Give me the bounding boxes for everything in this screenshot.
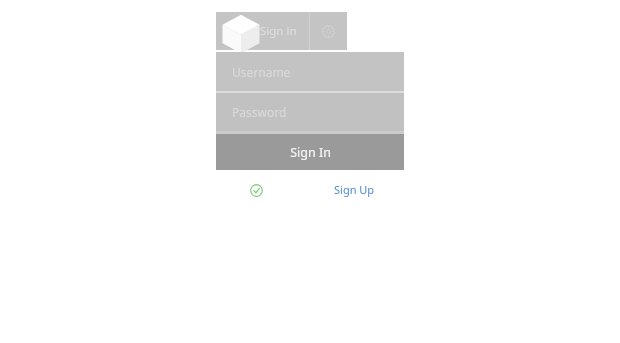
staticText: Password xyxy=(232,104,287,120)
button[interactable]: Sign Up xyxy=(330,180,378,198)
staticText: Sign In xyxy=(290,144,331,161)
staticText: Username xyxy=(232,64,291,80)
button[interactable]: Password xyxy=(216,93,404,131)
staticText: Sign Up xyxy=(334,182,375,197)
button[interactable]: Sign in xyxy=(216,12,309,50)
button[interactable]: Remember me xyxy=(245,179,267,201)
staticText: Sign in xyxy=(260,23,297,39)
button[interactable]: Sign In xyxy=(216,134,404,170)
other: App logo xyxy=(220,13,262,55)
